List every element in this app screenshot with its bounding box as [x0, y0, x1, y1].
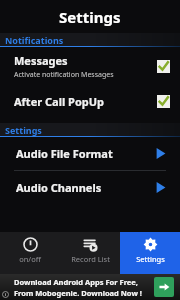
button[interactable]: Download	[154, 277, 174, 297]
button[interactable]: Audio File Format	[0, 137, 180, 170]
button[interactable]: Record list	[60, 232, 120, 274]
button[interactable]: Download Android Apps For Free,	[0, 274, 180, 300]
button[interactable]: Audio Channels	[0, 171, 180, 204]
staticText: Messages	[14, 53, 68, 68]
other: Record list	[83, 237, 98, 252]
other: On off	[23, 237, 38, 252]
staticText: Download Android Apps For Free,	[14, 277, 138, 287]
staticText: Notifications	[5, 34, 64, 46]
staticText: Activate notification Messages	[14, 70, 114, 80]
staticText: Audio File Format	[16, 146, 155, 161]
staticText: Record List	[71, 254, 110, 264]
staticText: Settings	[5, 124, 42, 136]
button[interactable]: Settings	[120, 232, 180, 274]
staticText: From Mobogenie. Download Now !	[14, 288, 142, 298]
button[interactable]: Messages	[0, 47, 180, 86]
other: Settings	[143, 237, 158, 252]
button[interactable]: After Call PopUp	[0, 88, 180, 115]
staticText: Settings	[59, 7, 121, 27]
button[interactable]: On off	[0, 232, 60, 274]
staticText: After Call PopUp	[14, 94, 104, 109]
staticText: on/off	[19, 254, 41, 264]
staticText: Audio Channels	[16, 180, 155, 195]
staticText: Settings	[136, 254, 165, 264]
